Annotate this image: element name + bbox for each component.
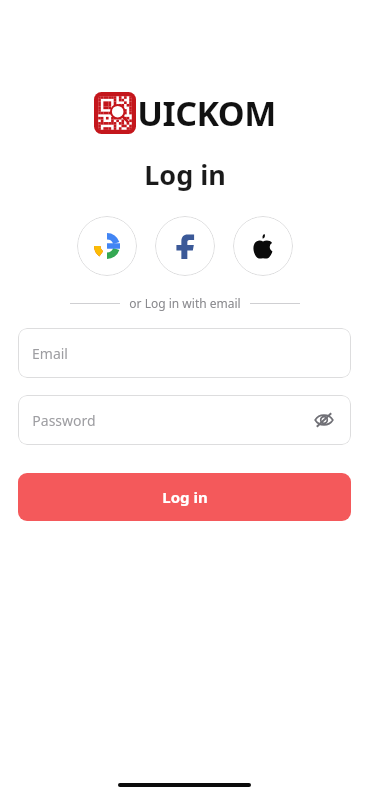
staticText: UICKOM [137,90,276,136]
staticText: Password [32,411,96,430]
staticText: or Log in with email [129,295,241,311]
button[interactable]: Sign in with Apple [233,216,293,276]
button[interactable]: Password [18,395,351,445]
button[interactable]: Log in [18,473,351,521]
button[interactable]: Email [18,328,351,378]
staticText: Email [32,344,68,363]
staticText: Log in [162,487,208,507]
button[interactable]: Sign in with Google [77,216,137,276]
button[interactable]: Sign in with Facebook [155,216,215,276]
button[interactable]: Show password [307,403,341,437]
staticText: Log in [144,156,226,193]
